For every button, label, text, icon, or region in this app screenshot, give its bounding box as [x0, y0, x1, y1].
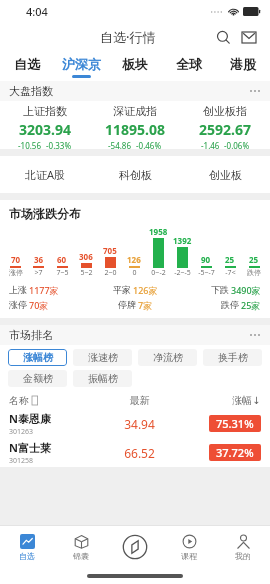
staticText: 705 — [103, 245, 117, 256]
staticText: 70 — [11, 254, 21, 265]
staticText: 25家 — [241, 299, 261, 311]
button[interactable]: 创业板指 — [180, 101, 270, 149]
button[interactable]: 课程 — [162, 526, 216, 568]
staticText: 我的 — [235, 551, 251, 561]
staticText: >7 — [34, 268, 43, 278]
staticText: 34.94 — [99, 416, 180, 432]
button[interactable]: 换手榜 — [203, 349, 262, 366]
button[interactable]: 振幅榜 — [73, 370, 132, 387]
staticText: 306 — [79, 251, 93, 262]
staticText: 66.52 — [99, 445, 180, 461]
staticText: -0.33% — [46, 140, 72, 149]
button[interactable]: More — [250, 334, 260, 336]
staticText: 7家 — [138, 299, 153, 311]
staticText: 涨幅榜 — [23, 351, 53, 364]
button[interactable]: More — [250, 90, 260, 92]
button[interactable]: Messages — [236, 24, 262, 50]
staticText: 金额榜 — [23, 372, 53, 385]
staticText: 4:04 — [26, 4, 48, 19]
staticText: 70家 — [29, 299, 49, 311]
staticText: 90 — [201, 254, 211, 265]
staticText: 涨停 — [9, 299, 27, 310]
button[interactable]: 创业板 — [180, 156, 270, 193]
staticText: 锦囊 — [73, 551, 89, 561]
staticText: 跌停 — [247, 268, 261, 277]
button[interactable]: 净流榜 — [138, 349, 197, 366]
staticText: 126家 — [133, 284, 158, 296]
button[interactable]: 港股 — [216, 52, 270, 81]
staticText: 自选·行情 — [100, 28, 156, 46]
button[interactable]: 沪深京 — [54, 52, 108, 81]
staticText: 1958 — [149, 226, 168, 237]
staticText: 大盘指数 — [9, 84, 53, 98]
button[interactable]: N泰恩康 — [0, 409, 270, 438]
button[interactable]: 深证成指 — [90, 101, 180, 149]
staticText: -10.56 — [18, 140, 42, 149]
staticText: 课程 — [181, 551, 197, 561]
button[interactable]: 全球 — [162, 52, 216, 81]
staticText: 301258 — [9, 456, 34, 466]
staticText: -0.46% — [136, 140, 162, 149]
staticText: 全球 — [176, 56, 202, 72]
button[interactable]: 涨幅榜 — [8, 349, 67, 366]
button[interactable]: 自选 — [0, 52, 54, 81]
staticText: 名称 — [9, 394, 29, 407]
staticText: 市场涨跌分布 — [9, 206, 81, 221]
button[interactable]: 科创板 — [90, 156, 180, 193]
staticText: 上证指数 — [23, 104, 67, 118]
staticText: 停牌 — [118, 299, 136, 310]
staticText: 3490家 — [231, 284, 261, 296]
staticText: N泰恩康 — [9, 411, 51, 426]
button[interactable]: 自选 — [0, 526, 54, 568]
staticText: 市场排名 — [9, 328, 53, 342]
staticText: -54.86 — [108, 140, 132, 149]
staticText: 净流榜 — [153, 351, 183, 364]
staticText: 最新 — [99, 394, 180, 407]
staticText: 平家 — [113, 284, 131, 295]
staticText: 60 — [57, 254, 67, 265]
staticText: -5~-7 — [198, 268, 215, 278]
staticText: -1.46 — [201, 140, 220, 149]
staticText: 涨幅↓ — [232, 394, 261, 407]
staticText: 37.72% — [216, 445, 254, 460]
staticText: 跌停 — [221, 299, 239, 310]
staticText: 0~-2 — [151, 268, 166, 278]
staticText: 振幅榜 — [88, 372, 118, 385]
staticText: 科创板 — [119, 168, 152, 182]
staticText: 板块 — [122, 56, 148, 72]
staticText: 下跌 — [211, 284, 229, 295]
button[interactable]: 锦囊 — [54, 526, 108, 568]
staticText: -0.06% — [224, 140, 250, 149]
staticText: 25 — [225, 254, 235, 265]
button[interactable]: 涨速榜 — [73, 349, 132, 366]
staticText: 5~2 — [80, 268, 93, 278]
staticText: -2~-5 — [174, 268, 191, 278]
button[interactable]: 上证指数 — [0, 101, 90, 149]
staticText: 3203.94 — [19, 120, 71, 139]
button[interactable]: Home — [108, 526, 162, 568]
staticText: 11895.08 — [105, 120, 165, 139]
staticText: 1177家 — [29, 284, 59, 296]
staticText: 自选 — [14, 56, 40, 72]
staticText: 涨速榜 — [88, 351, 118, 364]
staticText: 36 — [34, 254, 44, 265]
staticText: 涨停 — [9, 268, 23, 277]
button[interactable]: N富士莱 — [0, 438, 270, 467]
staticText: 创业板指 — [203, 104, 247, 118]
staticText: 2592.67 — [199, 120, 251, 139]
staticText: 自选 — [19, 551, 35, 561]
staticText: 港股 — [230, 56, 256, 72]
button[interactable]: 金额榜 — [8, 370, 67, 387]
button[interactable]: 北证A股 — [0, 156, 90, 193]
staticText: 1392 — [173, 235, 192, 246]
staticText: 创业板 — [209, 168, 242, 182]
staticText: 25 — [249, 254, 259, 265]
button[interactable]: 板块 — [108, 52, 162, 81]
staticText: 7~5 — [56, 268, 69, 278]
staticText: 深证成指 — [113, 104, 157, 118]
button[interactable]: 我的 — [216, 526, 270, 568]
staticText: 沪深京 — [62, 56, 101, 72]
staticText: 0 — [132, 268, 137, 278]
button[interactable]: Search — [210, 24, 236, 50]
staticText: 上涨 — [9, 284, 27, 295]
